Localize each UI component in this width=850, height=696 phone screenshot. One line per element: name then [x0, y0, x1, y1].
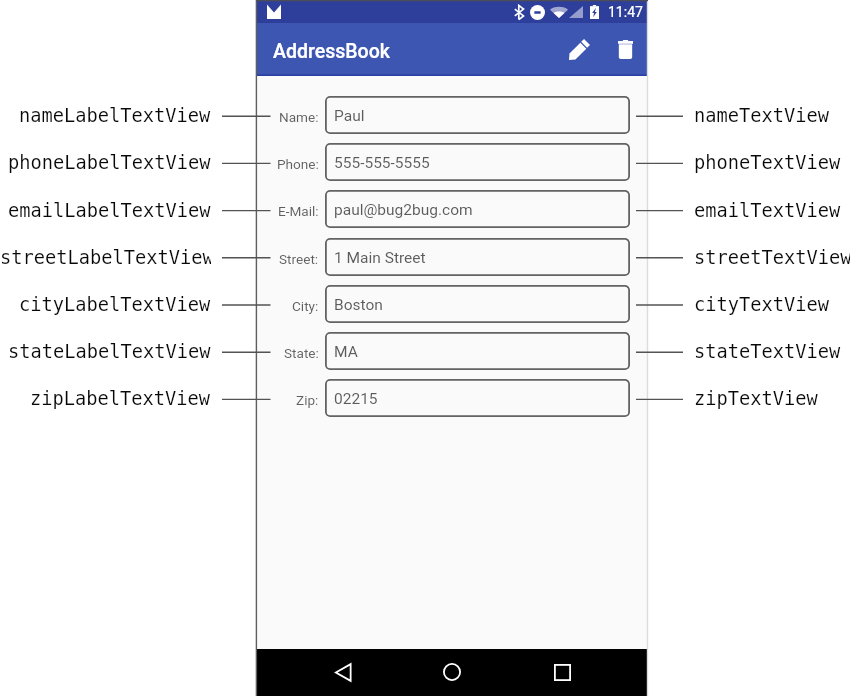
button[interactable]: Back	[323, 652, 363, 692]
staticText: paul@bug2bug.com	[334, 201, 473, 219]
button[interactable]: Home	[432, 652, 472, 692]
staticText: nameLabelTextView	[19, 105, 211, 127]
staticText: 1 Main Street	[334, 249, 426, 267]
staticText: zipLabelTextView	[30, 388, 211, 410]
button[interactable]: Edit	[558, 31, 598, 71]
staticText: cityLabelTextView	[19, 294, 211, 316]
button[interactable]: Boston	[325, 285, 630, 323]
staticText: cityTextView	[694, 294, 830, 316]
staticText: streetLabelTextView	[0, 247, 211, 269]
staticText: stateLabelTextView	[8, 341, 211, 363]
staticText: Name:	[279, 109, 319, 125]
button[interactable]: 555-555-5555	[325, 143, 630, 181]
button[interactable]: 02215	[325, 379, 630, 417]
staticText: 555-555-5555	[334, 154, 430, 172]
staticText: City:	[292, 298, 319, 314]
staticText: phoneTextView	[694, 152, 841, 174]
staticText: Paul	[334, 107, 365, 125]
button[interactable]: 1 Main Street	[325, 238, 630, 276]
staticText: AddressBook	[273, 40, 390, 63]
staticText: Street:	[279, 251, 319, 267]
button[interactable]: Paul	[325, 96, 630, 134]
staticText: MA	[334, 343, 358, 361]
staticText: 02215	[334, 390, 378, 408]
button[interactable]: Recents	[542, 652, 582, 692]
staticText: emailLabelTextView	[8, 200, 211, 222]
staticText: Zip:	[296, 392, 319, 408]
button[interactable]: MA	[325, 332, 630, 370]
staticText: nameTextView	[694, 105, 830, 127]
staticText: zipTextView	[694, 388, 818, 410]
staticText: phoneLabelTextView	[8, 152, 211, 174]
staticText: State:	[284, 345, 319, 361]
button[interactable]: Delete	[605, 29, 645, 69]
staticText: 11:47	[608, 4, 643, 20]
staticText: stateTextView	[694, 341, 841, 363]
staticText: streetTextView	[694, 247, 850, 269]
staticText: Phone:	[277, 156, 319, 172]
staticText: E-Mail:	[278, 203, 319, 219]
staticText: emailTextView	[694, 200, 841, 222]
staticText: Boston	[334, 296, 383, 314]
button[interactable]: paul@bug2bug.com	[325, 190, 630, 228]
